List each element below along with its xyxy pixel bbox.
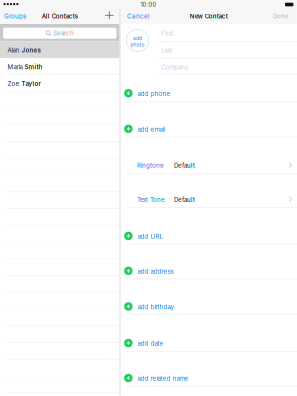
button[interactable]: Text Tone bbox=[120, 191, 297, 208]
button[interactable]: add date bbox=[120, 335, 297, 351]
button[interactable]: add birthday bbox=[120, 298, 297, 315]
staticText: Maria bbox=[7, 63, 24, 71]
staticText: Done bbox=[273, 13, 289, 20]
button[interactable]: Add photo bbox=[126, 29, 149, 52]
staticText: add phone bbox=[137, 90, 170, 97]
staticText: All Contacts bbox=[42, 13, 78, 20]
staticText: add URL bbox=[137, 233, 162, 240]
button[interactable]: add address bbox=[120, 262, 297, 279]
button[interactable]: Cancel bbox=[127, 12, 163, 20]
staticText: New Contact bbox=[190, 13, 228, 20]
button[interactable]: add URL bbox=[120, 228, 297, 244]
staticText: Groups bbox=[4, 12, 26, 20]
staticText: add birthday bbox=[137, 303, 173, 311]
staticText: Last bbox=[161, 47, 172, 54]
button[interactable]: Add contact bbox=[105, 11, 113, 19]
button[interactable]: Maria bbox=[0, 58, 119, 75]
staticText: add address bbox=[137, 268, 173, 275]
staticText: Text Tone bbox=[137, 196, 165, 203]
staticText: Company bbox=[161, 63, 188, 71]
staticText: 10:00 bbox=[140, 1, 156, 8]
staticText: Cancel bbox=[127, 12, 150, 20]
staticText: add related name bbox=[137, 375, 188, 382]
button[interactable]: Alan bbox=[0, 41, 119, 58]
button[interactable]: Search bbox=[3, 28, 116, 39]
staticText: add date bbox=[137, 340, 163, 347]
button[interactable]: Done bbox=[259, 12, 289, 20]
button[interactable]: Ringtone bbox=[120, 157, 297, 173]
staticText: Smith bbox=[24, 63, 42, 71]
staticText: photo bbox=[131, 42, 145, 48]
button[interactable]: add phone bbox=[120, 85, 297, 102]
button[interactable]: add email bbox=[120, 120, 297, 137]
button[interactable]: Zoe bbox=[0, 75, 119, 92]
staticText: Jones bbox=[21, 47, 40, 54]
staticText: Search bbox=[53, 29, 74, 37]
staticText: Default bbox=[174, 196, 195, 203]
staticText: Alan bbox=[7, 47, 21, 54]
button[interactable]: Groups bbox=[4, 12, 44, 20]
staticText: Taylor bbox=[21, 80, 40, 88]
button[interactable]: add related name bbox=[120, 370, 297, 386]
staticText: add bbox=[133, 35, 142, 41]
staticText: First bbox=[161, 30, 173, 37]
staticText: Zoe bbox=[7, 80, 21, 88]
staticText: Default bbox=[174, 162, 195, 169]
staticText: Ringtone bbox=[137, 162, 164, 169]
staticText: add email bbox=[137, 126, 164, 133]
